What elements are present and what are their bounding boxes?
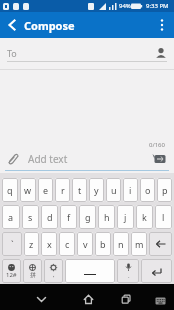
button[interactable]: , [44, 259, 63, 283]
button[interactable]: t [72, 178, 87, 202]
button[interactable]: l [155, 205, 172, 229]
staticText: 拼 [30, 271, 36, 279]
staticText: h [104, 211, 110, 223]
staticText: , [53, 271, 55, 279]
button[interactable]: m [131, 232, 147, 256]
staticText: e [43, 184, 49, 196]
button[interactable]: a [2, 205, 20, 229]
staticText: n [118, 238, 124, 250]
button[interactable]: r [55, 178, 70, 202]
button[interactable]: 12# [2, 259, 21, 283]
button[interactable]: . [117, 259, 139, 283]
button[interactable]: f [60, 205, 77, 229]
staticText: . [128, 272, 130, 280]
button[interactable]: y [89, 178, 104, 202]
staticText: 0/160 [149, 141, 165, 149]
staticText: w [24, 184, 32, 196]
staticText: l [162, 211, 165, 223]
button[interactable]: d [41, 205, 58, 229]
staticText: z [29, 238, 34, 250]
button[interactable] [65, 259, 115, 283]
staticText: b [100, 238, 106, 250]
button[interactable] [78, 289, 98, 309]
button[interactable]: To [7, 47, 167, 59]
button[interactable] [141, 259, 172, 283]
button[interactable]: j [117, 205, 134, 229]
staticText: r [61, 184, 65, 196]
staticText: 94% [119, 2, 131, 10]
button[interactable]: h [98, 205, 115, 229]
button[interactable] [152, 292, 168, 308]
button[interactable] [0, 13, 24, 37]
button[interactable] [155, 47, 167, 59]
staticText: Compose [24, 18, 75, 33]
button[interactable]: k [136, 205, 153, 229]
button[interactable]: w [20, 178, 36, 202]
staticText: j [124, 211, 127, 223]
staticText: 9:33 PM [146, 2, 169, 10]
button[interactable]: x [41, 232, 57, 256]
button[interactable]: Add text [7, 151, 167, 166]
button[interactable]: v [77, 232, 93, 256]
staticText: Add text [28, 152, 68, 166]
button[interactable]: n [113, 232, 129, 256]
button[interactable]: b [95, 232, 111, 256]
staticText: i [129, 184, 132, 196]
staticText: o [145, 184, 151, 196]
button[interactable]: g [79, 205, 96, 229]
button[interactable]: p [157, 178, 172, 202]
staticText: ` [11, 238, 14, 250]
staticText: p [162, 184, 168, 196]
button[interactable]: 拼 [23, 259, 42, 283]
button[interactable]: u [106, 178, 121, 202]
button[interactable]: q [2, 178, 18, 202]
staticText: x [47, 238, 52, 250]
button[interactable]: z [24, 232, 39, 256]
button[interactable]: e [38, 178, 53, 202]
staticText: a [8, 211, 14, 223]
staticText: To [7, 47, 17, 59]
button[interactable] [116, 289, 136, 309]
button[interactable] [152, 151, 167, 166]
button[interactable] [152, 15, 172, 35]
staticText: y [94, 184, 99, 196]
staticText: c [65, 238, 70, 250]
button[interactable]: ` [2, 232, 22, 256]
button[interactable]: o [140, 178, 155, 202]
button[interactable] [149, 232, 172, 256]
staticText: k [142, 211, 147, 223]
staticText: t [78, 184, 82, 196]
staticText: f [67, 211, 71, 223]
button[interactable]: s [22, 205, 39, 229]
staticText: v [83, 238, 88, 250]
staticText: 12# [6, 271, 17, 279]
button[interactable]: i [123, 178, 138, 202]
staticText: d [47, 211, 53, 223]
staticText: g [85, 211, 91, 223]
button[interactable]: c [59, 232, 75, 256]
staticText: m [135, 238, 144, 250]
staticText: u [111, 184, 117, 196]
staticText: s [28, 211, 33, 223]
button[interactable] [31, 289, 51, 309]
staticText: q [7, 184, 13, 196]
